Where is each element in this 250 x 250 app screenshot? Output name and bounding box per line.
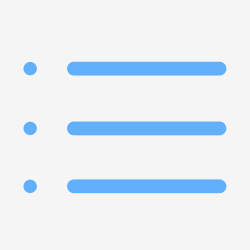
button[interactable]: List item 2 xyxy=(23,121,226,135)
button[interactable]: List item 1 xyxy=(23,62,226,75)
button[interactable]: List item 3 xyxy=(23,179,226,193)
